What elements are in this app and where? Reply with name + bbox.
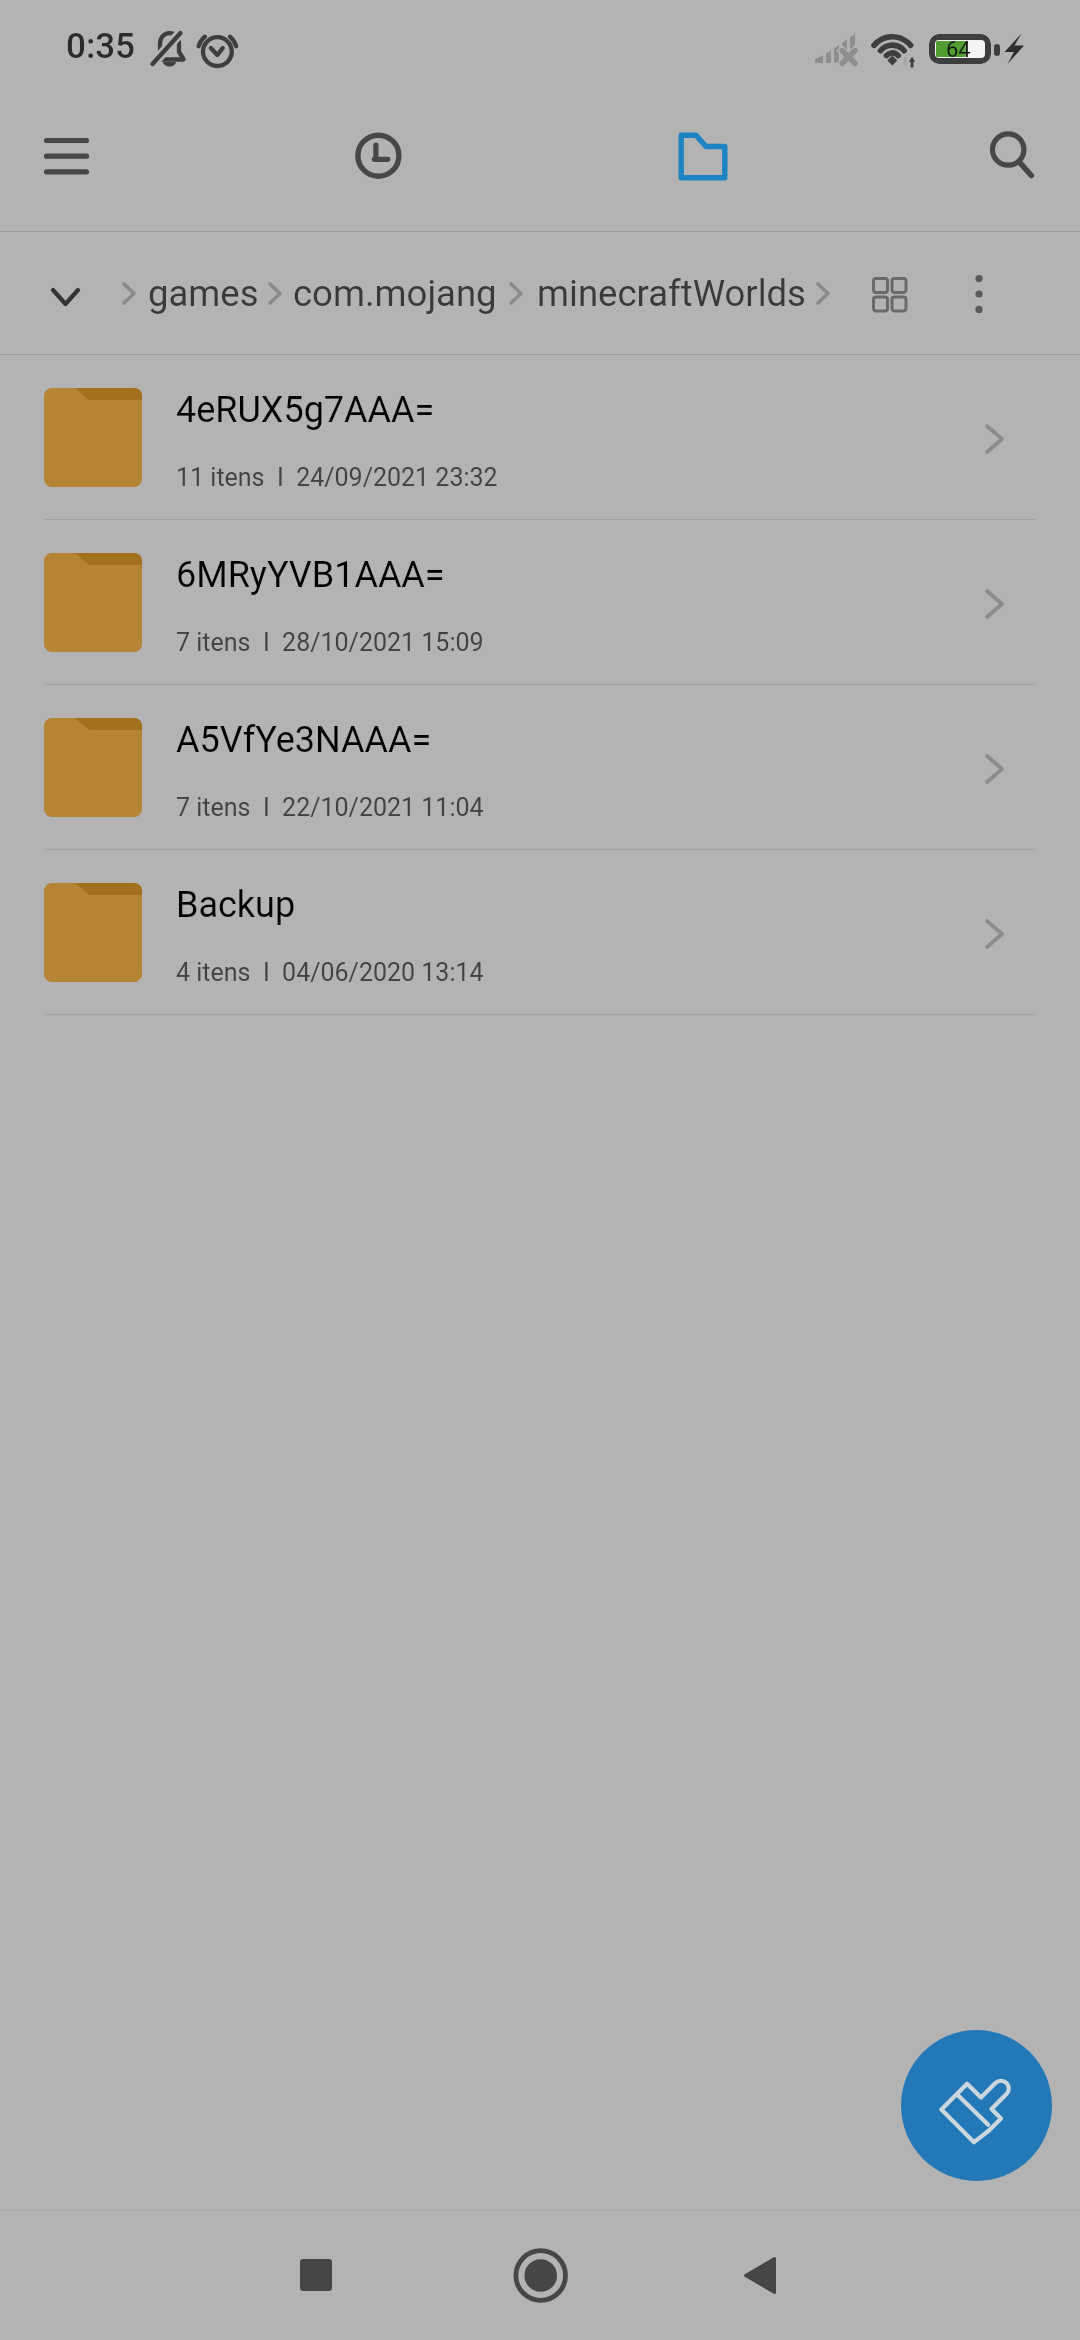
staticText: games bbox=[148, 272, 259, 315]
button[interactable]: New paint job bbox=[901, 2030, 1052, 2181]
staticText: 7 itens I 22/10/2021 11:04 bbox=[176, 793, 484, 822]
staticText: 4eRUX5g7AAA= bbox=[176, 389, 435, 431]
button[interactable]: Back bbox=[690, 2230, 842, 2340]
button[interactable]: Search bbox=[953, 100, 1073, 232]
button[interactable]: A5VfYe3NAAA= bbox=[0, 685, 1080, 850]
button[interactable]: Recents bbox=[240, 2230, 392, 2340]
button[interactable]: Folders bbox=[642, 100, 762, 232]
staticText: A5VfYe3NAAA= bbox=[176, 719, 432, 761]
button[interactable]: Backup bbox=[0, 850, 1080, 1015]
button[interactable]: minecraftWorlds bbox=[527, 232, 816, 355]
button[interactable]: 4eRUX5g7AAA= bbox=[0, 355, 1080, 520]
staticText: minecraftWorlds bbox=[537, 272, 806, 315]
staticText: 4 itens I 04/06/2020 13:14 bbox=[176, 958, 484, 987]
button[interactable]: Grid view bbox=[849, 232, 929, 355]
staticText: com.mojang bbox=[293, 272, 497, 315]
button[interactable]: Path list bbox=[10, 232, 120, 355]
button[interactable]: Menu bbox=[6, 100, 126, 232]
staticText: 6MRyYVB1AAA= bbox=[176, 554, 445, 596]
staticText: 11 itens I 24/09/2021 23:32 bbox=[176, 463, 498, 492]
button[interactable]: games bbox=[138, 232, 269, 355]
button[interactable]: More options bbox=[939, 232, 1019, 355]
staticText: Backup bbox=[176, 884, 296, 926]
button[interactable]: com.mojang bbox=[283, 232, 507, 355]
staticText: 7 itens I 28/10/2021 15:09 bbox=[176, 628, 484, 657]
button[interactable]: 6MRyYVB1AAA= bbox=[0, 520, 1080, 685]
staticText: 0:35 bbox=[66, 26, 135, 67]
button[interactable]: Recent files bbox=[317, 100, 437, 232]
button[interactable]: Home bbox=[465, 2230, 617, 2340]
staticText: 64 bbox=[946, 37, 971, 63]
